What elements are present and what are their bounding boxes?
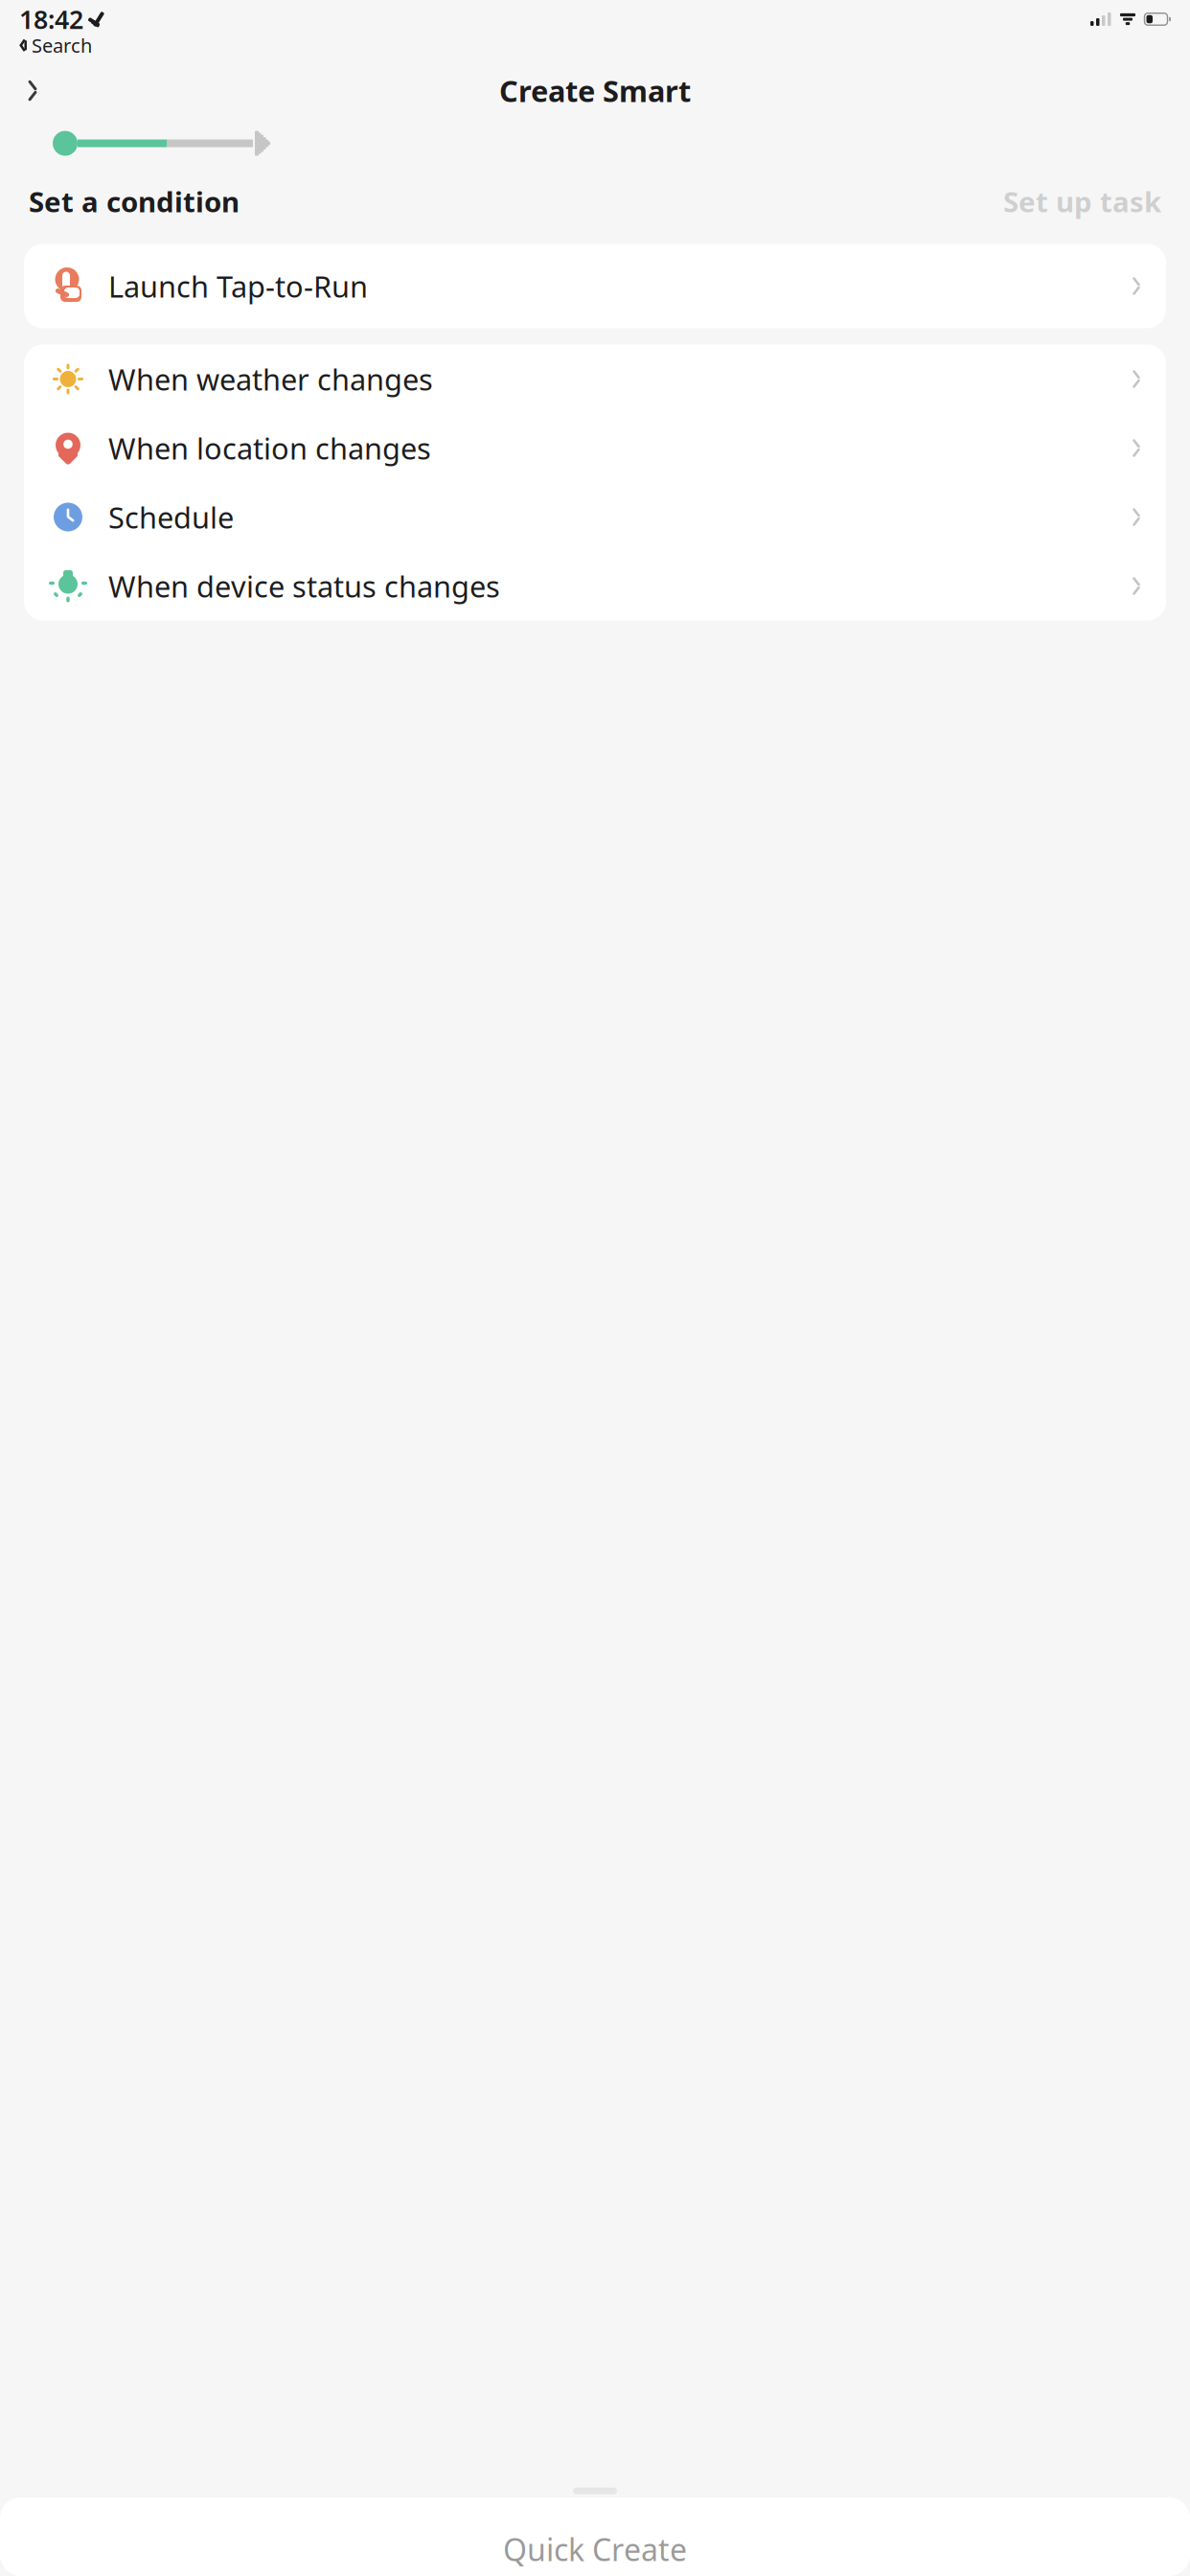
staticText: Set up task — [1003, 183, 1161, 220]
button[interactable]: Schedule — [24, 483, 1166, 552]
staticText: Search — [32, 33, 92, 58]
staticText: Quick Create — [503, 2529, 687, 2570]
button[interactable]: Launch Tap-to-Run — [24, 244, 1166, 328]
staticText: When weather changes — [108, 360, 433, 399]
button[interactable]: When device status changes — [24, 552, 1166, 621]
staticText: 18:42 — [19, 2, 83, 36]
staticText: Set a condition — [29, 183, 240, 220]
button[interactable]: Back — [11, 70, 54, 112]
staticText: Launch Tap-to-Run — [108, 267, 368, 306]
button[interactable]: When weather changes — [24, 345, 1166, 414]
staticText: When device status changes — [108, 567, 500, 606]
staticText: Schedule — [108, 498, 234, 537]
button[interactable]: Quick Create — [0, 2515, 1190, 2576]
staticText: Create Smart — [499, 71, 691, 110]
staticText: When location changes — [108, 429, 431, 468]
button[interactable]: When location changes — [24, 414, 1166, 483]
